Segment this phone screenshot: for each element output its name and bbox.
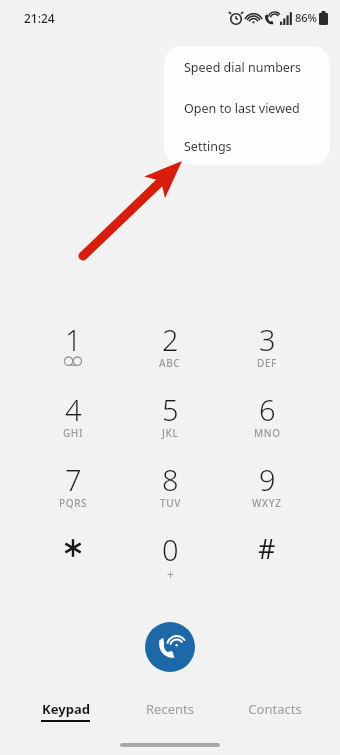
button[interactable]: 0 <box>126 530 214 590</box>
staticText: 7 <box>65 460 82 496</box>
staticText: Speed dial numbers <box>184 59 302 76</box>
button[interactable]: Open to last viewed <box>164 89 330 127</box>
button[interactable]: 8 <box>126 460 214 520</box>
button[interactable]: Speed dial numbers <box>164 46 330 89</box>
staticText: 5 <box>162 390 179 426</box>
staticText: TUV <box>160 496 181 510</box>
button[interactable]: 6 <box>223 390 311 450</box>
button[interactable]: 9 <box>223 460 311 520</box>
staticText: JKL <box>162 426 179 440</box>
button[interactable]: 5 <box>126 390 214 450</box>
staticText: 0 <box>162 530 179 566</box>
staticText: # <box>258 530 276 566</box>
button[interactable]: Settings <box>164 127 330 165</box>
staticText: Settings <box>184 138 232 155</box>
button[interactable]: Keypad <box>15 700 115 736</box>
button[interactable] <box>29 530 117 590</box>
staticText: Contacts <box>248 700 302 718</box>
button[interactable]: 1 <box>29 320 117 380</box>
staticText: PQRS <box>59 496 88 510</box>
button[interactable]: Recents <box>120 700 220 736</box>
button[interactable]: # <box>223 530 311 590</box>
button[interactable]: 7 <box>29 460 117 520</box>
button[interactable]: Contacts <box>225 700 325 736</box>
button[interactable]: 2 <box>126 320 214 380</box>
button[interactable]: 4 <box>29 390 117 450</box>
staticText: WXYZ <box>252 496 282 510</box>
staticText: Open to last viewed <box>184 100 300 117</box>
staticText: 1 <box>65 320 82 356</box>
staticText: + <box>167 566 174 580</box>
button[interactable]: Call <box>145 622 195 672</box>
staticText: Keypad <box>42 700 90 718</box>
staticText: 2 <box>162 320 179 356</box>
staticText: 86% <box>295 10 317 25</box>
staticText: 6 <box>259 390 276 426</box>
staticText: 9 <box>259 460 276 496</box>
staticText: Recents <box>146 700 194 718</box>
staticText: 8 <box>162 460 179 496</box>
staticText: GHI <box>63 426 84 440</box>
staticText: MNO <box>254 426 281 440</box>
staticText: 4 <box>65 390 82 426</box>
staticText: 21:24 <box>24 10 55 26</box>
staticText: 3 <box>259 320 276 356</box>
staticText: ABC <box>159 356 181 370</box>
button[interactable]: 3 <box>223 320 311 380</box>
staticText: DEF <box>257 356 277 370</box>
